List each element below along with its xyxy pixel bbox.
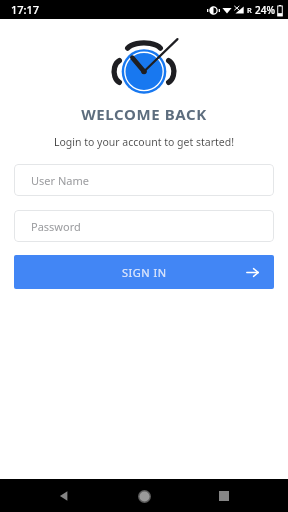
staticText: R (247, 5, 252, 15)
button[interactable]: Password (14, 210, 274, 242)
button[interactable]: User Name (14, 164, 274, 196)
button[interactable]: Back (52, 484, 76, 508)
button[interactable]: Home (132, 484, 156, 508)
staticText: Login to your account to get started! (0, 135, 288, 149)
button[interactable]: SIGN IN (14, 255, 274, 289)
staticText: 17:17 (11, 2, 40, 17)
staticText: 24% (255, 3, 275, 17)
staticText: User Name (31, 173, 89, 188)
staticText: Password (31, 219, 81, 234)
staticText: SIGN IN (122, 265, 167, 280)
button[interactable]: Recent apps (212, 484, 236, 508)
staticText: WELCOME BACK (0, 104, 288, 124)
